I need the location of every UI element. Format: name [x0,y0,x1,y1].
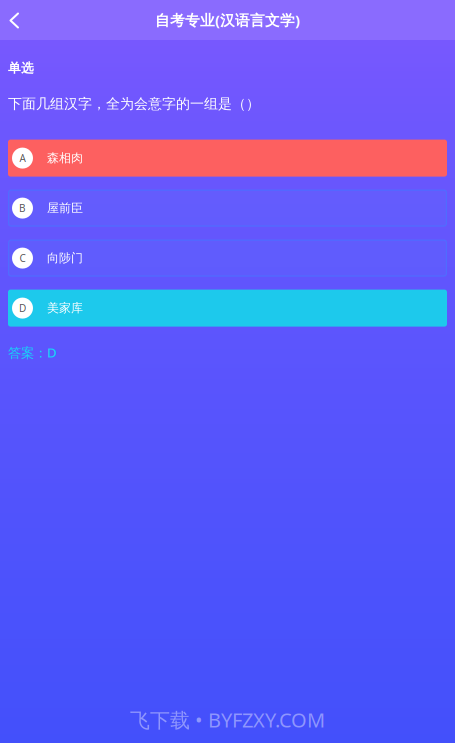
button[interactable]: B [8,190,447,227]
staticText: 答案：D [8,344,57,361]
button[interactable]: A [8,140,447,177]
button[interactable]: Back [0,0,40,40]
staticText: A [19,151,25,165]
staticText: 屋前臣 [47,201,83,215]
staticText: 向陟门 [47,251,83,265]
staticText: 自考专业(汉语言文学) [155,10,300,30]
staticText: 单选 [8,60,34,76]
button[interactable]: D [8,290,447,327]
staticText: B [19,201,26,215]
button[interactable]: C [8,240,447,277]
staticText: 飞下载 • BYFZXY.COM [130,706,325,733]
staticText: C [19,251,25,265]
staticText: 森相肉 [47,151,83,165]
staticText: D [19,301,26,315]
staticText: 下面几组汉字，全为会意字的一组是（） [8,95,260,113]
staticText: 美家库 [47,301,83,315]
